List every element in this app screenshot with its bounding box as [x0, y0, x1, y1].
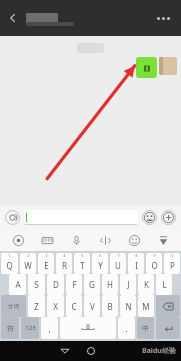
- button[interactable]: 中: [137, 317, 154, 339]
- staticText: L: [162, 279, 167, 290]
- button[interactable]: N: [120, 295, 136, 317]
- button[interactable]: J: [120, 274, 136, 295]
- button[interactable]: D: [47, 274, 64, 295]
- button[interactable]: Hide keyboard: [152, 229, 174, 251]
- staticText: S: [34, 279, 39, 290]
- staticText: 分词: [8, 303, 19, 310]
- button[interactable]: 分词: [1, 295, 26, 317]
- staticText: H: [107, 279, 113, 290]
- button[interactable]: S: [28, 274, 45, 295]
- staticText: I: [135, 260, 138, 271]
- button[interactable]: F: [66, 274, 82, 295]
- button[interactable]: Back: [56, 342, 74, 360]
- staticText: 符: [7, 324, 14, 333]
- staticText: O: [151, 260, 158, 271]
- staticText: 3: [45, 253, 48, 258]
- staticText: E: [44, 260, 49, 271]
- button[interactable]: 6: [92, 253, 108, 274]
- button[interactable]: ,: [41, 317, 58, 339]
- button[interactable]: 0: [164, 253, 180, 274]
- staticText: 1: [8, 253, 11, 258]
- staticText: 4: [63, 253, 66, 258]
- button[interactable]: [136, 57, 157, 78]
- staticText: 8: [135, 253, 138, 258]
- button[interactable]: Voice: [65, 229, 87, 251]
- staticText: K: [144, 279, 149, 290]
- button[interactable]: .: [118, 317, 135, 339]
- staticText: P: [170, 260, 175, 271]
- button[interactable]: Emoji: [141, 209, 158, 226]
- button[interactable]: 2: [20, 253, 36, 274]
- button[interactable]: 符: [1, 317, 19, 339]
- staticText: Z: [34, 301, 39, 312]
- button[interactable]: Back: [0, 5, 26, 31]
- button[interactable]: X: [47, 295, 64, 317]
- staticText: X: [53, 301, 58, 312]
- button[interactable]: K: [138, 274, 154, 295]
- staticText: T: [80, 260, 85, 271]
- button[interactable]: 3: [38, 253, 54, 274]
- staticText: 2: [27, 253, 30, 258]
- staticText: 0: [171, 253, 174, 258]
- staticText: C: [71, 301, 77, 312]
- staticText: Y: [98, 260, 103, 271]
- button[interactable]: 4: [56, 253, 72, 274]
- staticText: 中: [142, 324, 149, 333]
- button[interactable]: H: [102, 274, 118, 295]
- button[interactable]: [24, 210, 138, 225]
- button[interactable]: 9: [146, 253, 162, 274]
- staticText: A: [15, 279, 21, 290]
- staticText: ,: [48, 323, 51, 334]
- button[interactable]: Z: [28, 295, 45, 317]
- button[interactable]: Space: [60, 317, 116, 339]
- button[interactable]: L: [156, 274, 172, 295]
- button[interactable]: V: [84, 295, 100, 317]
- staticText: 5: [81, 253, 84, 258]
- button[interactable]: More options: [151, 6, 175, 30]
- button[interactable]: M: [138, 295, 154, 317]
- staticText: N: [125, 301, 132, 312]
- staticText: 123: [25, 324, 36, 332]
- staticText: D: [53, 279, 59, 290]
- staticText: W: [24, 260, 32, 271]
- button[interactable]: Emoticons: [123, 229, 145, 251]
- staticText: 6: [99, 253, 102, 258]
- button[interactable]: Add: [160, 209, 177, 226]
- staticText: Q: [6, 260, 13, 271]
- button[interactable]: Input method logo: [7, 229, 29, 251]
- button[interactable]: 8: [128, 253, 144, 274]
- button[interactable]: Backspace: [156, 295, 180, 317]
- staticText: V: [90, 301, 95, 312]
- staticText: .: [125, 323, 128, 334]
- staticText: J: [127, 279, 130, 290]
- button[interactable]: Enter: [156, 317, 180, 339]
- button[interactable]: C: [66, 295, 82, 317]
- staticText: Baidu经验: [142, 346, 176, 356]
- button[interactable]: B: [102, 295, 118, 317]
- staticText: 7: [117, 253, 120, 258]
- button[interactable]: 5: [74, 253, 90, 274]
- button[interactable]: Keyboard: [36, 229, 58, 251]
- staticText: R: [62, 260, 67, 271]
- button[interactable]: Text cursor: [94, 229, 116, 251]
- button[interactable]: 1: [1, 253, 18, 274]
- staticText: 9: [153, 253, 156, 258]
- button[interactable]: Home: [82, 342, 100, 360]
- button[interactable]: Voice input: [4, 209, 21, 226]
- button[interactable]: G: [84, 274, 100, 295]
- button[interactable]: Avatar: [159, 57, 177, 75]
- button[interactable]: 7: [110, 253, 126, 274]
- staticText: G: [89, 279, 95, 290]
- staticText: U: [115, 260, 121, 271]
- button[interactable]: 123: [21, 317, 39, 339]
- staticText: B: [107, 301, 113, 312]
- staticText: F: [72, 279, 77, 290]
- button[interactable]: A: [9, 274, 26, 295]
- staticText: M: [142, 301, 150, 312]
